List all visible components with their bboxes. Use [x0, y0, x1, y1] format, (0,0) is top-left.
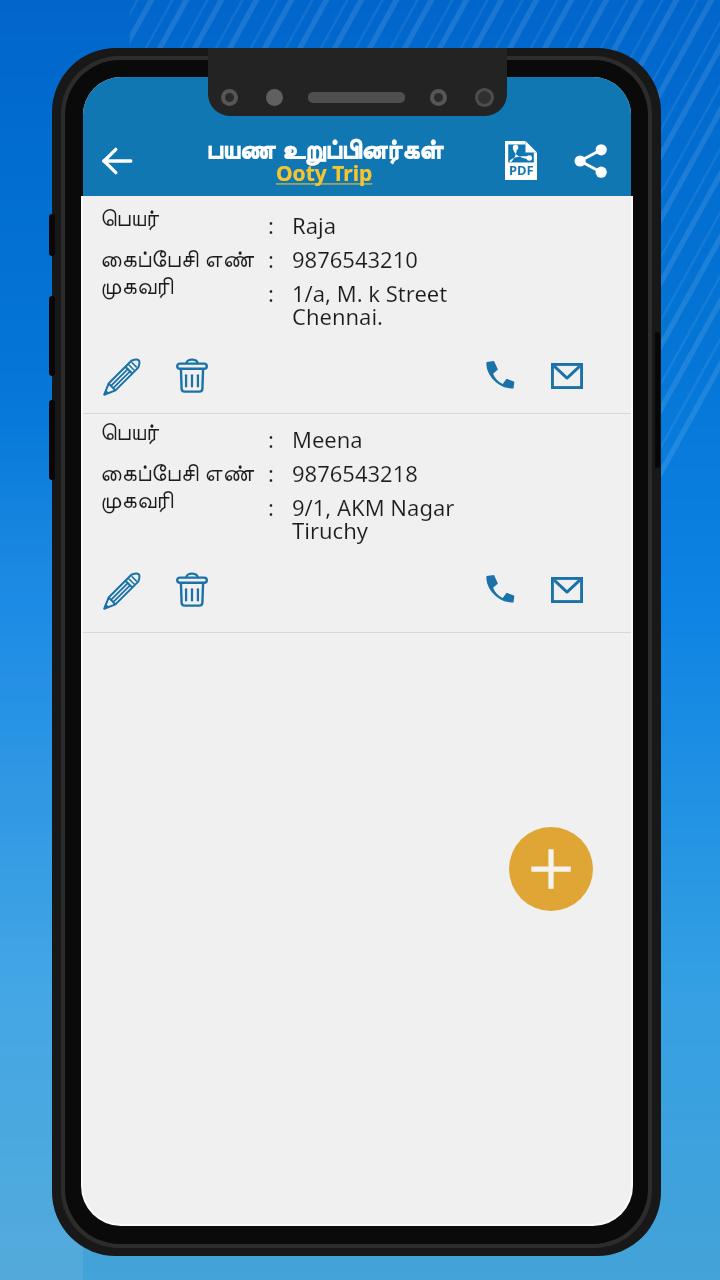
staticText: பெயர் — [100, 421, 159, 445]
button[interactable]: Email — [543, 566, 591, 614]
staticText: முகவரி — [100, 275, 173, 299]
staticText: கைப்பேசி எண் — [100, 455, 255, 488]
button[interactable]: Call — [476, 564, 524, 612]
staticText: 9876543210 — [292, 244, 418, 274]
staticText: முகவரி — [100, 489, 173, 513]
staticText: : — [268, 244, 274, 274]
staticText: Meena — [292, 424, 363, 454]
staticText: Raja — [292, 210, 337, 240]
staticText: : — [268, 458, 274, 488]
button[interactable]: Add member — [509, 827, 593, 911]
button[interactable]: Email — [543, 352, 591, 400]
staticText: பயண உறுப்பினர்கள் — [206, 130, 443, 167]
button[interactable]: Back — [93, 137, 141, 185]
staticText: கைப்பேசி எண் — [100, 241, 255, 274]
staticText: Tiruchy — [292, 515, 368, 545]
staticText: : — [268, 278, 274, 308]
staticText: : — [268, 492, 274, 522]
staticText: PDF — [509, 161, 534, 179]
button[interactable]: Delete — [168, 352, 216, 400]
staticText: பெயர் — [100, 207, 159, 231]
button[interactable]: Share — [565, 135, 617, 187]
button[interactable]: Export PDF — [495, 134, 547, 186]
staticText: 9876543218 — [292, 458, 418, 488]
button[interactable]: Edit — [98, 352, 146, 400]
button[interactable]: Delete — [168, 566, 216, 614]
staticText: Chennai. — [292, 301, 384, 331]
staticText: Ooty Trip — [276, 159, 373, 188]
staticText: 9/1, AKM Nagar — [292, 492, 455, 522]
button[interactable]: Edit — [98, 566, 146, 614]
staticText: : — [268, 210, 274, 240]
staticText: 1/a, M. k Street — [292, 278, 448, 308]
staticText: : — [268, 424, 274, 454]
button[interactable]: Call — [476, 350, 524, 398]
